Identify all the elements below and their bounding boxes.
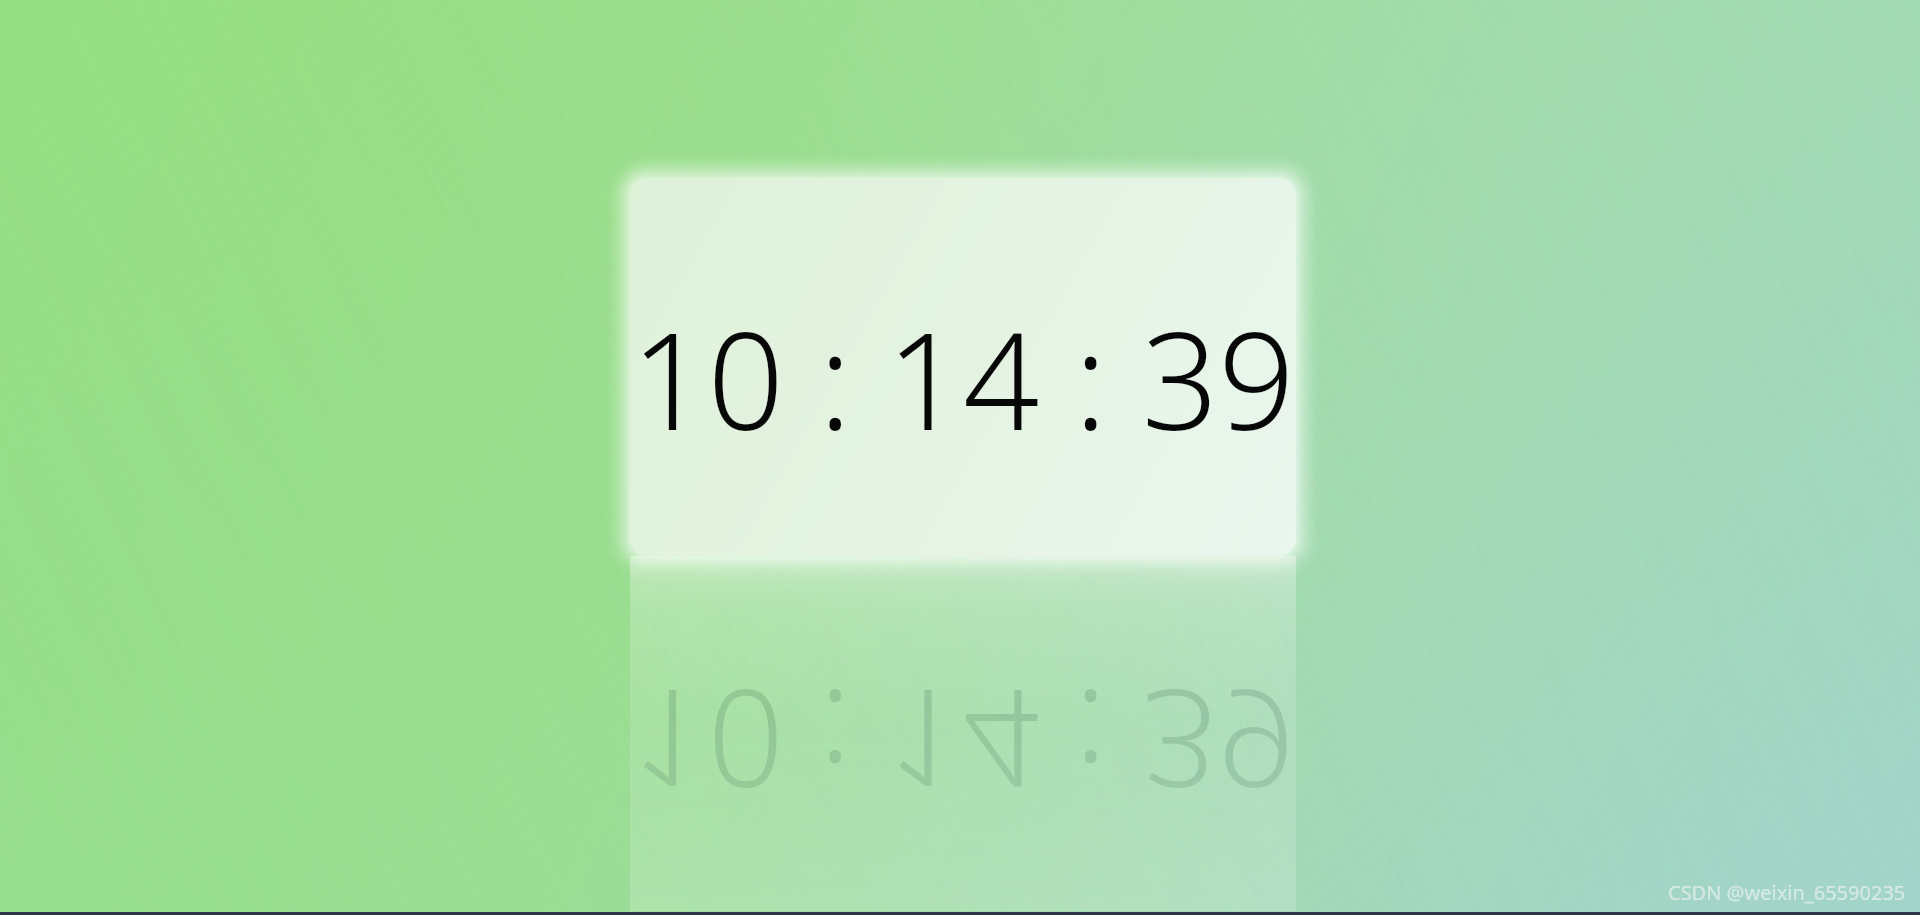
- button[interactable]: Current time 10 : 14 : 39: [630, 178, 1296, 556]
